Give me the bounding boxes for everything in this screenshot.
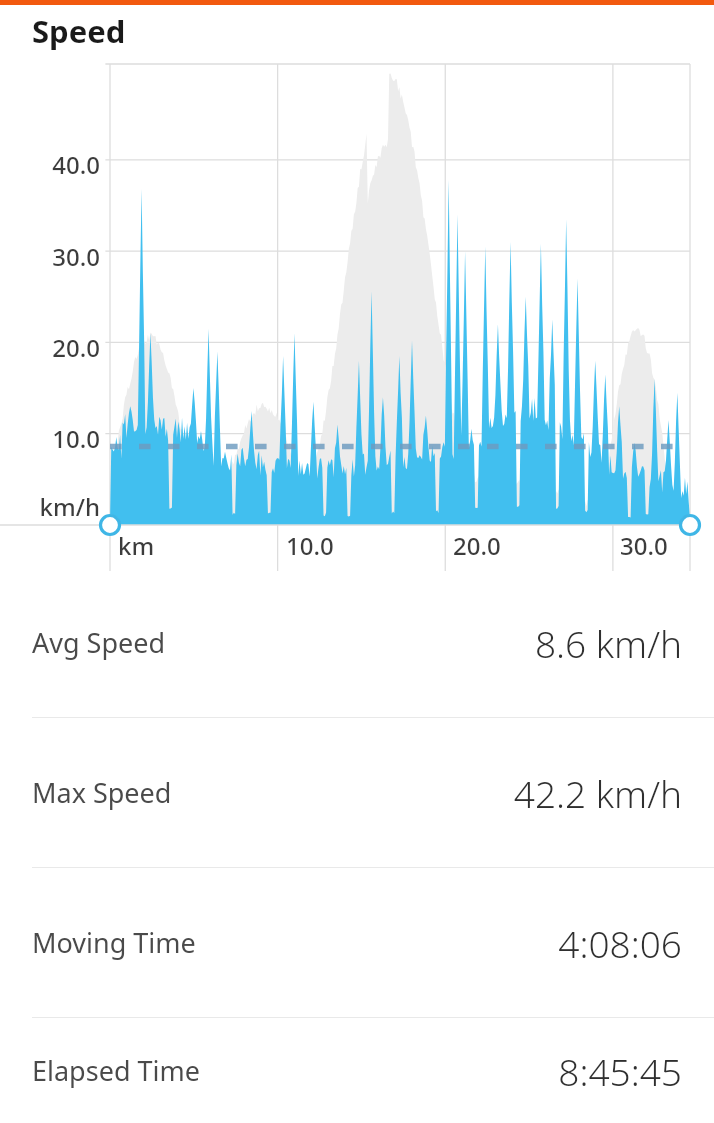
- button[interactable]: Avg Speed: [0, 568, 714, 717]
- staticText: 40.0: [30, 148, 100, 181]
- staticText: 20.0: [453, 529, 533, 562]
- staticText: 10.0: [30, 422, 100, 455]
- staticText: 8.6 km/h: [534, 618, 682, 668]
- staticText: Avg Speed: [32, 624, 166, 661]
- staticText: km: [118, 529, 198, 562]
- staticText: Max Speed: [32, 774, 172, 811]
- button[interactable]: Moving Time: [0, 868, 714, 1017]
- staticText: Speed: [32, 10, 126, 52]
- staticText: 10.0: [286, 529, 366, 562]
- staticText: 4:08:06: [558, 918, 682, 968]
- button[interactable]: Elapsed Time: [0, 1018, 714, 1123]
- button[interactable]: Max Speed: [0, 718, 714, 867]
- staticText: km/h: [30, 490, 100, 523]
- staticText: 20.0: [30, 331, 100, 364]
- staticText: Elapsed Time: [32, 1052, 200, 1089]
- staticText: Moving Time: [32, 924, 196, 961]
- staticText: 42.2 km/h: [513, 768, 682, 818]
- staticText: 30.0: [30, 240, 100, 273]
- staticText: 30.0: [620, 529, 700, 562]
- staticText: 8:45:45: [558, 1046, 682, 1096]
